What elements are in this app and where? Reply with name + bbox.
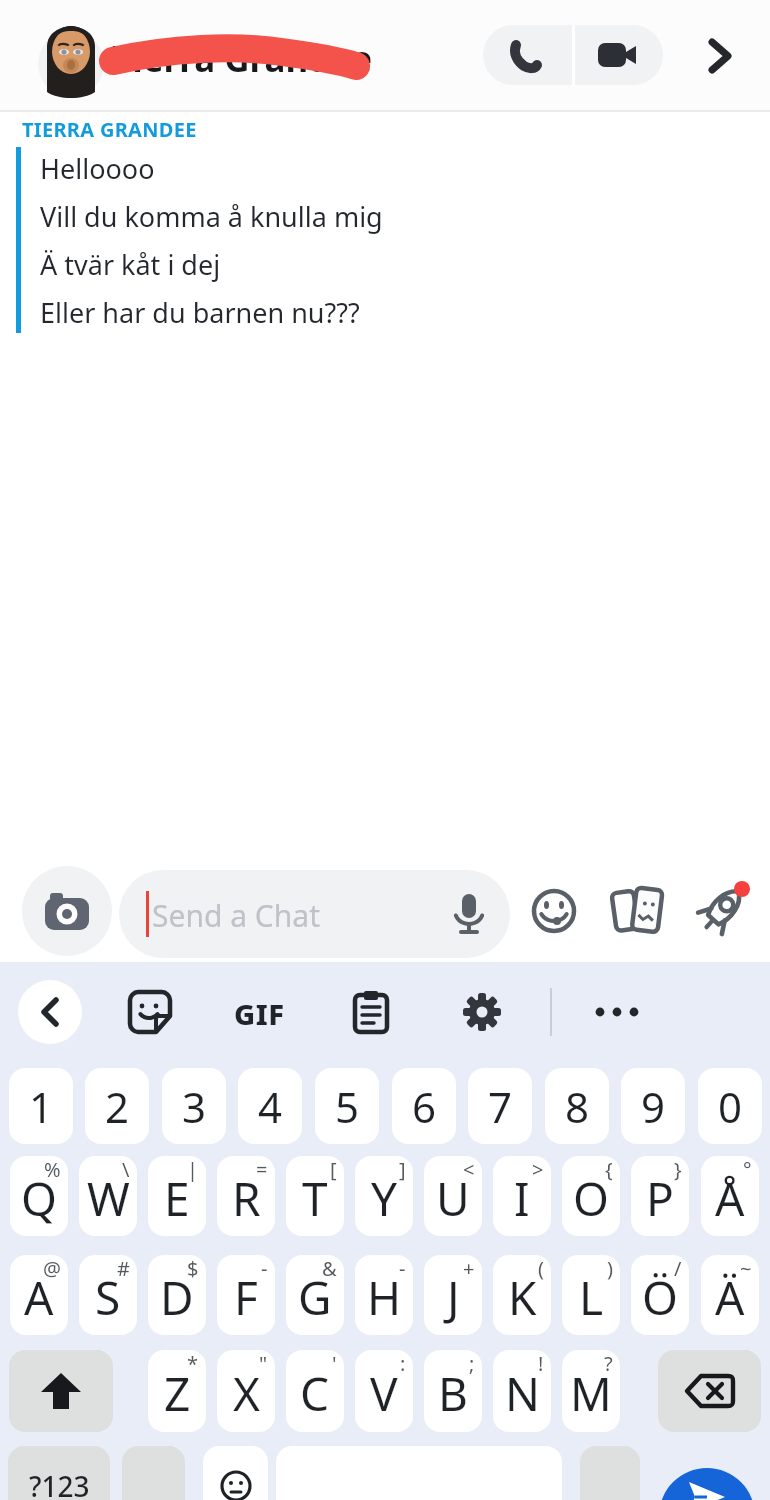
button[interactable]: Ö [631,1255,689,1335]
button[interactable]: M [562,1350,620,1432]
button[interactable] [128,990,172,1034]
staticText: < [463,1156,475,1183]
staticText: % [44,1156,61,1183]
button[interactable]: I [493,1156,551,1236]
button[interactable]: Ä [701,1255,759,1335]
staticText: 9 [641,1078,666,1135]
staticText: & [322,1255,337,1282]
button[interactable]: ?123 [8,1446,110,1500]
button[interactable]: V [355,1350,413,1432]
button[interactable]: C [286,1350,344,1432]
staticText: Send a Chat [152,895,320,936]
button[interactable]: R [217,1156,275,1236]
button[interactable] [696,884,750,936]
button[interactable]: Y [355,1156,413,1236]
staticText: ~ [740,1255,752,1282]
staticText: } [674,1156,682,1183]
button[interactable]: Z [148,1350,206,1432]
button[interactable]: 5 [315,1068,379,1144]
staticText: 7 [488,1078,513,1135]
button[interactable]: Q [10,1156,68,1236]
button[interactable] [658,1350,761,1432]
staticText: - [261,1255,268,1282]
staticText: Y [371,1167,398,1230]
button[interactable] [203,1446,268,1500]
button[interactable]: 3 [162,1068,226,1144]
staticText: ' [332,1350,337,1377]
staticText: $ [187,1255,199,1282]
button[interactable]: B [424,1350,482,1432]
button[interactable]: G [286,1255,344,1335]
button[interactable] [594,1006,642,1018]
staticText: ; [469,1350,475,1377]
staticText: ? [604,1350,613,1377]
button[interactable]: E [148,1156,206,1236]
staticText: ?123 [29,1467,90,1500]
staticText: Tierra Grandee [112,35,373,83]
button[interactable]: 0 [698,1068,762,1144]
staticText: X [233,1362,260,1425]
staticText: U [436,1167,470,1230]
button[interactable]: 1 [9,1068,73,1144]
button[interactable]: L [562,1255,620,1335]
button[interactable] [706,38,736,74]
staticText: Å [715,1167,745,1230]
button[interactable] [531,888,577,934]
button[interactable] [580,1446,640,1500]
button[interactable] [352,990,390,1034]
button[interactable]: Å [701,1156,759,1236]
button[interactable]: 6 [392,1068,456,1144]
button[interactable]: X [217,1350,275,1432]
button[interactable] [122,1446,185,1500]
button[interactable]: A [10,1255,68,1335]
button[interactable] [22,866,112,956]
staticText: - [399,1255,406,1282]
staticText: / [674,1255,682,1282]
button[interactable]: F [217,1255,275,1335]
button[interactable] [483,25,663,85]
button[interactable]: K [493,1255,551,1335]
staticText: 0 [718,1078,743,1135]
staticText: O [573,1167,609,1230]
button[interactable]: GIF [234,994,285,1033]
staticText: Eller har du barnen nu??? [40,294,360,331]
staticText: 4 [258,1078,283,1135]
staticText: B [438,1362,468,1425]
button[interactable]: H [355,1255,413,1335]
staticText: * [187,1350,199,1377]
button[interactable]: S [79,1255,137,1335]
button[interactable]: O [562,1156,620,1236]
button[interactable]: W [79,1156,137,1236]
staticText: A [24,1266,54,1329]
button[interactable]: U [424,1156,482,1236]
button[interactable] [462,992,502,1032]
button[interactable]: 9 [621,1068,685,1144]
button[interactable]: N [493,1350,551,1432]
button[interactable] [18,980,82,1044]
button[interactable] [9,1350,113,1432]
staticText: Q [21,1167,57,1230]
button[interactable]: 2 [85,1068,149,1144]
button[interactable]: 8 [545,1068,609,1144]
button[interactable] [659,1468,755,1500]
button[interactable]: 4 [238,1068,302,1144]
staticText: M [570,1362,612,1425]
button[interactable] [36,20,108,100]
button[interactable] [612,886,664,936]
staticText: : [400,1350,406,1377]
staticText: Vill du komma å knulla mig [40,198,383,235]
staticText: @ [43,1255,61,1282]
staticText: + [463,1255,475,1282]
staticText: 2 [105,1078,130,1135]
button[interactable]: 7 [468,1068,532,1144]
button[interactable]: Send a Chat [119,870,510,958]
button[interactable]: T [286,1156,344,1236]
button[interactable]: P [631,1156,689,1236]
staticText: V [370,1362,398,1425]
staticText: P [646,1167,674,1230]
button[interactable]: J [424,1255,482,1335]
staticText: Ä tvär kåt i dej [40,246,221,283]
staticText: [ [330,1156,337,1183]
button[interactable]: D [148,1255,206,1335]
